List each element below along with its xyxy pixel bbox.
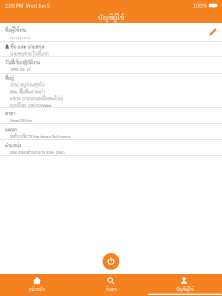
staticText: บัญชีผู้ใช้ (98, 12, 124, 22)
staticText: บ้าน: หมู่บ้านสุขใจ (10, 82, 45, 88)
staticText: Wed Jun 5 (23, 2, 50, 9)
staticText: แผนก (5, 126, 17, 132)
staticText: DM (DM)ส่วนกลาง (DM-DM) (10, 149, 64, 155)
staticText: 2:05 PM (5, 2, 23, 9)
staticText: แขวง: บางบอนเหนือเขตใหม่ (10, 95, 63, 101)
button[interactable]: แก้ไข (204, 23, 222, 41)
staticText: บัญชีผู้ใช้ (176, 286, 194, 292)
staticText: 100% (193, 2, 207, 9)
staticText: ชื่อ และ นามสกุล (10, 43, 44, 50)
button[interactable]: หน้าหลัก (0, 274, 74, 296)
staticText: นายสมชาย ใจดีมาก (10, 51, 49, 56)
button[interactable]: ค้นหา (74, 274, 148, 296)
staticText: สาขา (5, 110, 15, 116)
staticText: ที่อยู่ (5, 74, 14, 81)
staticText: Head Office (10, 117, 32, 123)
button[interactable]: ออกจากระบบ (103, 253, 119, 270)
staticText: 1992-02-13 (10, 66, 30, 72)
staticText: เขต: พื้นที่ตลาดเก่า (10, 89, 45, 94)
staticText: เบอร์โทร: 028 55206866 (10, 102, 51, 108)
staticText: ธุรกิจบริการ Hardware Software (10, 133, 70, 139)
staticText: ตำแหน่ง (5, 142, 21, 148)
staticText: วันที่เริ่มปฏิบัติงาน (5, 59, 40, 65)
button[interactable]: บัญชีผู้ใช้ (148, 274, 222, 296)
staticText: ชื่อผู้ใช้งาน (5, 26, 26, 33)
staticText: หน้าหลัก (28, 286, 45, 292)
staticText: ค้นหา (105, 286, 116, 292)
